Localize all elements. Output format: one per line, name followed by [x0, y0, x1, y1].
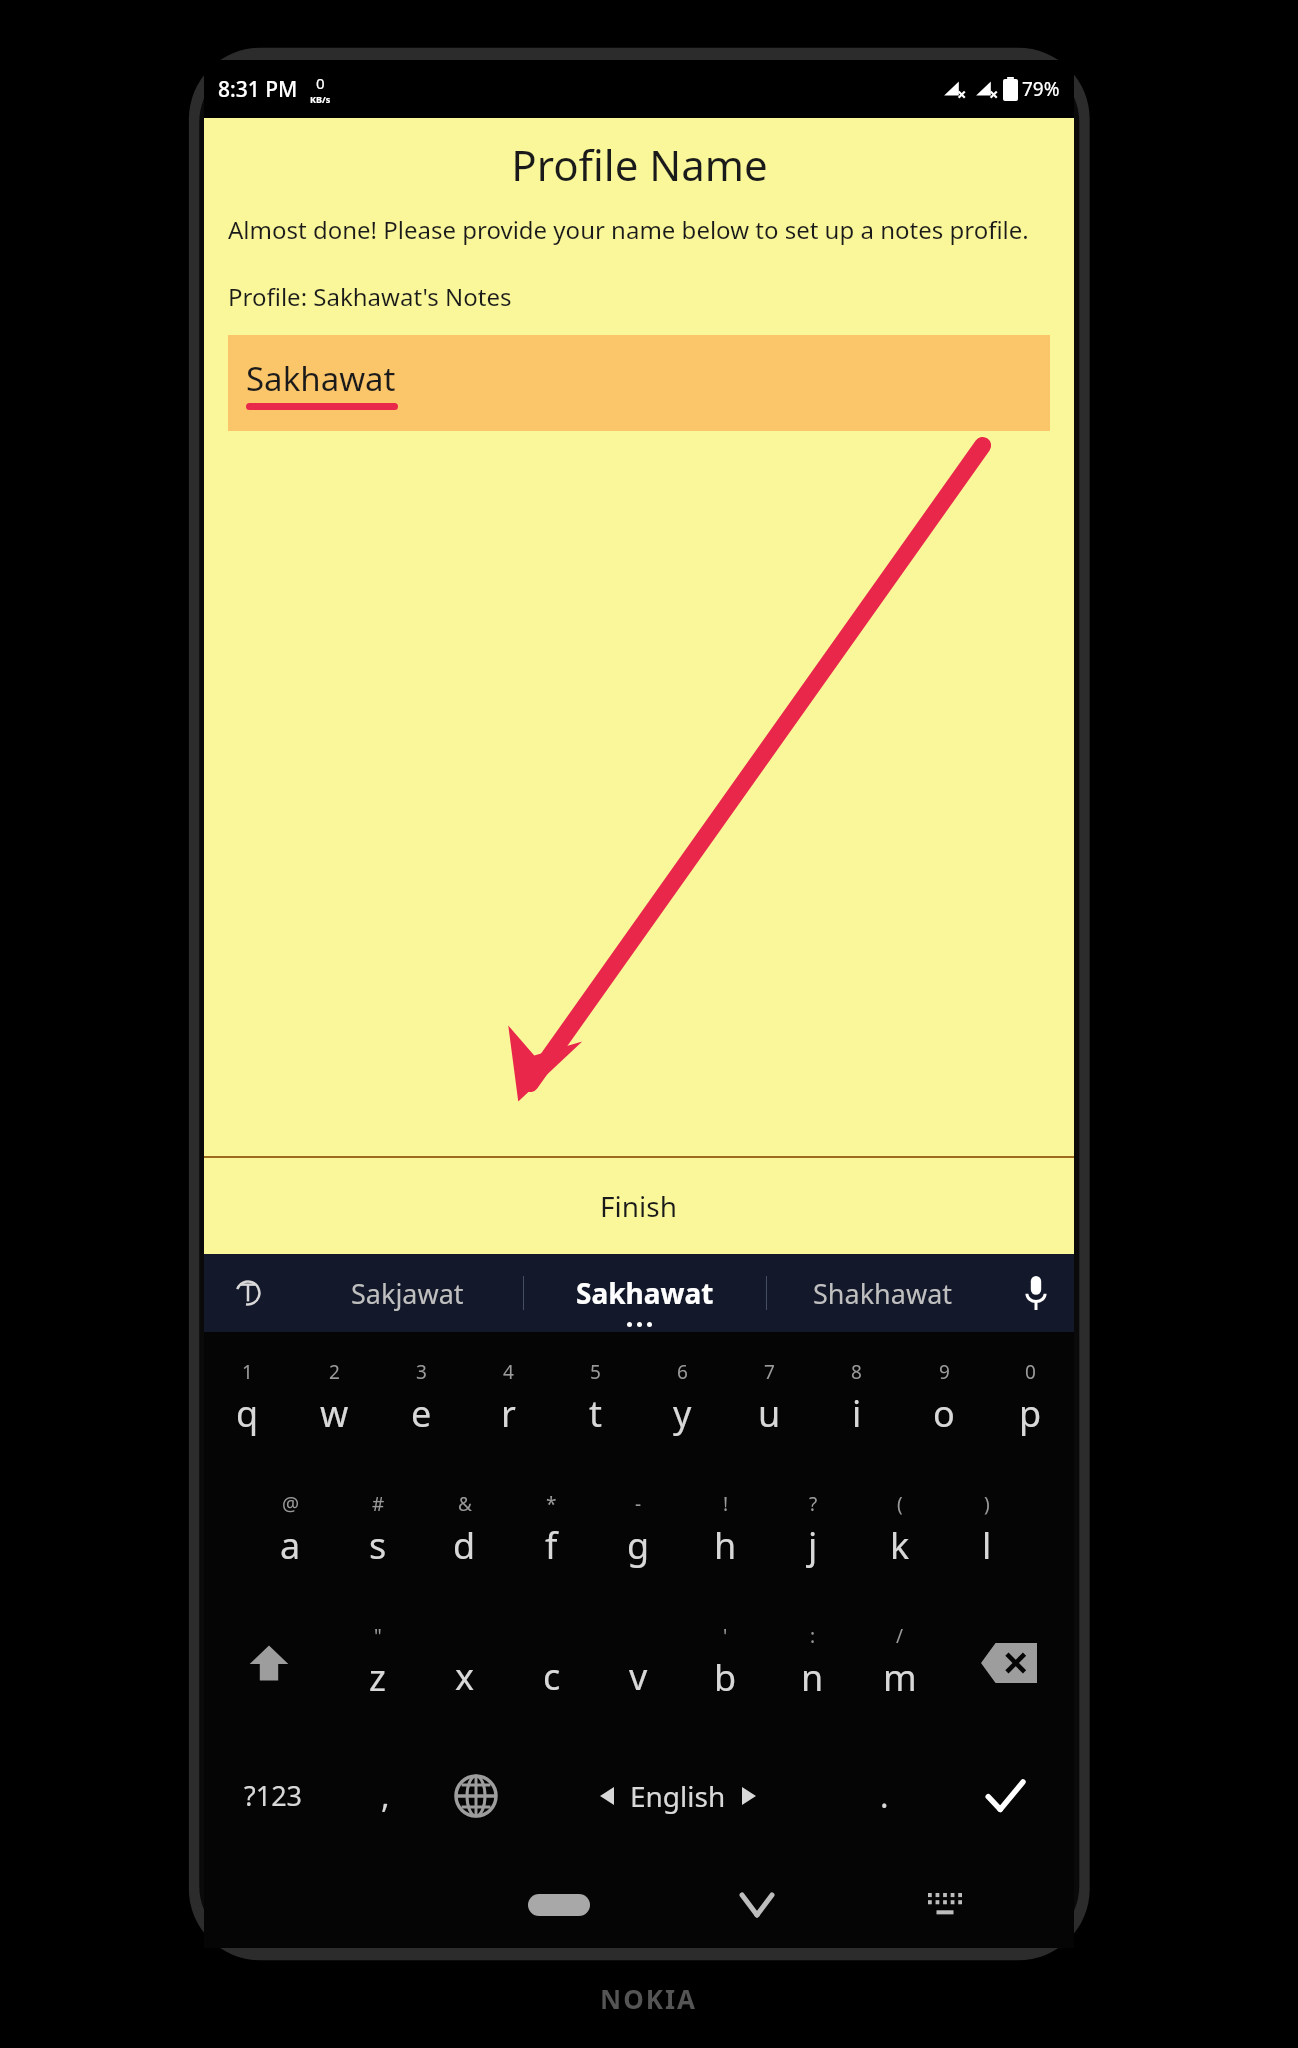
button[interactable]: # [334, 1464, 421, 1596]
staticText: n [801, 1653, 824, 1702]
button[interactable]: 2 [291, 1332, 378, 1464]
staticText: 6 [677, 1359, 688, 1385]
button[interactable]: 6 [639, 1332, 726, 1464]
button[interactable]: & [421, 1464, 508, 1596]
staticText: Sakjawat [351, 1275, 464, 1312]
staticText: v [629, 1652, 648, 1701]
staticText: l [982, 1521, 992, 1570]
button[interactable]: Sakhawat [524, 1254, 766, 1332]
button[interactable]: . [833, 1729, 936, 1862]
button[interactable]: 9 [900, 1332, 987, 1464]
button[interactable]: 3 [378, 1332, 465, 1464]
staticText: 8:31 PM [218, 75, 298, 104]
button[interactable]: Done [936, 1729, 1074, 1862]
button[interactable]: Shakhawat [767, 1254, 998, 1332]
staticText: KB/s [310, 93, 331, 105]
staticText: & [458, 1491, 472, 1517]
staticText: 8 [851, 1359, 862, 1385]
button[interactable]: / [856, 1596, 943, 1729]
button[interactable]: ( [856, 1464, 943, 1596]
button[interactable]: ! [682, 1464, 769, 1596]
staticText: Profile Name [511, 136, 768, 193]
staticText: 0 [1025, 1359, 1036, 1385]
button[interactable]: Finish [204, 1158, 1074, 1254]
button[interactable]: Hide keyboard [658, 1895, 856, 1915]
button[interactable]: 7 [726, 1332, 813, 1464]
staticText: t [589, 1389, 602, 1438]
button[interactable]: c [508, 1596, 595, 1729]
staticText: s [369, 1521, 387, 1570]
button[interactable]: ? [769, 1464, 856, 1596]
staticText: Sakhawat [246, 356, 396, 401]
button[interactable]: Text edit tools [204, 1254, 292, 1332]
staticText: 0 [316, 73, 325, 93]
button[interactable]: * [508, 1464, 595, 1596]
staticText: - [635, 1491, 642, 1517]
button[interactable]: Switch keyboard [856, 1893, 1034, 1917]
staticText: x [455, 1652, 475, 1701]
staticText: ? [809, 1491, 818, 1517]
staticText: h [714, 1521, 737, 1570]
button[interactable]: Home [460, 1894, 658, 1916]
button[interactable]: English [523, 1729, 833, 1862]
button[interactable]: 4 [465, 1332, 552, 1464]
staticText: c [543, 1652, 561, 1701]
staticText: # [372, 1491, 385, 1517]
staticText: @ [282, 1491, 300, 1517]
staticText: : [810, 1623, 816, 1649]
button[interactable]: 5 [552, 1332, 639, 1464]
button[interactable]: ) [943, 1464, 1030, 1596]
button[interactable]: x [421, 1596, 508, 1729]
staticText: * [546, 1491, 557, 1517]
staticText: Profile: Sakhawat's Notes [228, 280, 512, 313]
staticText: o [933, 1389, 955, 1438]
staticText: d [453, 1521, 476, 1570]
button[interactable]: : [769, 1596, 856, 1729]
button[interactable]: ?123 [204, 1729, 342, 1862]
button[interactable]: Shift [204, 1596, 334, 1729]
button[interactable]: 0 [987, 1332, 1074, 1464]
staticText: Sakhawat [576, 1274, 714, 1312]
staticText: g [627, 1521, 650, 1570]
staticText: ) [984, 1491, 990, 1517]
staticText: a [280, 1521, 301, 1570]
staticText: p [1019, 1389, 1042, 1438]
staticText: English [630, 1777, 726, 1815]
staticText: 7 [764, 1359, 775, 1385]
staticText: Finish [600, 1187, 678, 1225]
button[interactable]: 1 [204, 1332, 291, 1464]
button[interactable]: " [334, 1596, 421, 1729]
staticText: ! [723, 1491, 729, 1517]
button[interactable]: Sakhawat [228, 335, 1050, 431]
staticText: m [883, 1653, 917, 1702]
button[interactable]: @ [247, 1464, 334, 1596]
button[interactable]: Change keyboard language [428, 1729, 523, 1862]
staticText: q [236, 1389, 259, 1438]
button[interactable]: Backspace [943, 1596, 1074, 1729]
staticText: 9 [939, 1359, 950, 1385]
staticText: 3 [416, 1359, 427, 1385]
staticText: r [501, 1389, 516, 1438]
staticText: NOKIA [600, 1981, 698, 2016]
staticText: b [714, 1653, 737, 1702]
staticText: e [411, 1389, 432, 1438]
staticText: i [852, 1389, 862, 1438]
staticText: ' [723, 1623, 728, 1649]
staticText: Almost done! Please provide your name be… [228, 213, 1050, 246]
staticText: w [320, 1389, 349, 1438]
staticText: k [890, 1521, 910, 1570]
button[interactable]: , [342, 1729, 428, 1862]
button[interactable]: Sakjawat [292, 1254, 523, 1332]
button[interactable]: ' [682, 1596, 769, 1729]
button[interactable]: Voice input [998, 1254, 1074, 1332]
button[interactable]: - [595, 1464, 682, 1596]
staticText: . [880, 1774, 889, 1818]
staticText: 1 [242, 1359, 253, 1385]
staticText: ( [897, 1491, 903, 1517]
staticText: " [374, 1623, 382, 1649]
staticText: / [896, 1623, 904, 1649]
button[interactable]: 8 [813, 1332, 900, 1464]
staticText: j [808, 1521, 818, 1570]
staticText: 2 [329, 1359, 340, 1385]
button[interactable]: v [595, 1596, 682, 1729]
